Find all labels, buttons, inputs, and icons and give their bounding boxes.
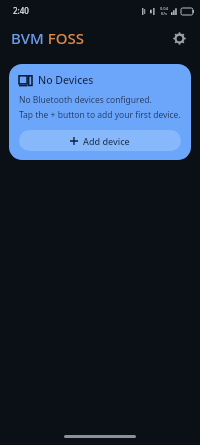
staticText: 2:40 bbox=[13, 5, 29, 16]
staticText: BVM FOSS bbox=[11, 28, 84, 48]
button[interactable]: Add device bbox=[19, 130, 181, 151]
staticText: Add device bbox=[83, 135, 130, 147]
staticText: Tap the + button to add your first devic… bbox=[19, 109, 181, 121]
staticText: 0.04 bbox=[160, 6, 168, 11]
staticText: No Bluetooth devices configured. bbox=[19, 94, 152, 106]
staticText: K/s bbox=[161, 11, 167, 16]
staticText: No Devices bbox=[38, 73, 94, 87]
button[interactable]: Settings bbox=[166, 25, 192, 51]
